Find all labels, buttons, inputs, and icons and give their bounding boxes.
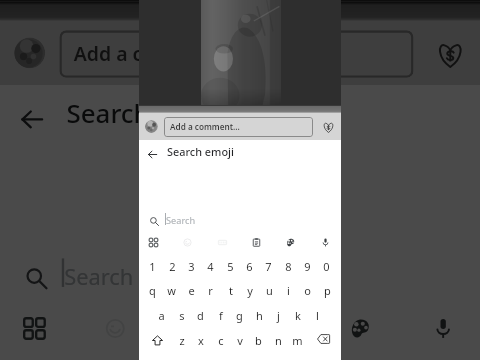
button[interactable]: t [221, 279, 240, 301]
button[interactable]: 8 [333, 358, 378, 360]
button[interactable]: Voice input [317, 234, 334, 251]
staticText: u [266, 283, 273, 298]
staticText: p [324, 283, 331, 298]
button[interactable]: Recent [145, 234, 162, 251]
button[interactable]: Stickers [340, 308, 380, 349]
staticText: 7 [265, 259, 272, 274]
staticText: Search [166, 214, 196, 227]
button[interactable]: y [240, 279, 259, 301]
button[interactable]: v [230, 329, 249, 351]
staticText: Add a comment... [170, 121, 240, 132]
staticText: e [188, 283, 195, 298]
button[interactable]: w [162, 279, 181, 301]
button[interactable]: 5 [221, 255, 240, 277]
staticText: o [304, 283, 311, 298]
button[interactable]: m [288, 329, 307, 351]
staticText: 0 [323, 259, 330, 274]
staticText: 6 [246, 259, 253, 274]
button[interactable]: f [211, 304, 230, 326]
button[interactable]: 2 [163, 255, 182, 277]
staticText: j [277, 308, 280, 323]
button[interactable]: 6 [240, 255, 259, 277]
staticText: n [275, 333, 282, 348]
button[interactable]: o [298, 279, 317, 301]
button[interactable]: Emoji [179, 234, 196, 251]
button[interactable]: 3 [182, 255, 201, 277]
button[interactable]: 3 [102, 358, 147, 360]
button[interactable]: GIF [178, 308, 219, 349]
button[interactable]: z [172, 329, 191, 351]
button[interactable]: Clipboard [259, 308, 299, 349]
button[interactable]: 0 [317, 255, 336, 277]
button[interactable]: d [191, 304, 210, 326]
staticText: l [316, 308, 319, 323]
button[interactable]: Shift [147, 330, 167, 350]
button[interactable]: Clipboard [248, 234, 265, 251]
button[interactable]: h [250, 304, 269, 326]
button[interactable]: Add a comment... [164, 117, 313, 137]
button[interactable]: k [288, 304, 307, 326]
button[interactable]: Voice input [423, 308, 463, 349]
staticText: 2 [169, 259, 176, 274]
button[interactable]: Back [12, 99, 52, 140]
button[interactable]: n [269, 329, 288, 351]
button[interactable]: Recent [14, 308, 55, 349]
button[interactable]: Send a gift [319, 118, 337, 136]
button[interactable]: 8 [279, 255, 298, 277]
button[interactable]: Profile [14, 37, 45, 68]
button[interactable]: p [318, 279, 337, 301]
button[interactable]: e [182, 279, 201, 301]
button[interactable]: Send a gift [428, 33, 470, 75]
button[interactable]: q [143, 279, 162, 301]
staticText: Search [64, 261, 135, 292]
staticText: s [179, 308, 185, 323]
button[interactable]: j [269, 304, 288, 326]
button[interactable]: Search [139, 212, 341, 232]
button[interactable]: 4 [201, 255, 220, 277]
staticText: Search emoji [66, 94, 226, 130]
button[interactable]: Back [144, 146, 161, 163]
button[interactable]: g [230, 304, 249, 326]
staticText: 5 [227, 259, 234, 274]
button[interactable]: b [249, 329, 268, 351]
staticText: x [198, 333, 204, 348]
button[interactable]: 9 [298, 255, 317, 277]
staticText: v [237, 333, 243, 348]
staticText: g [236, 308, 243, 323]
staticText: i [287, 283, 290, 298]
button[interactable]: s [172, 304, 191, 326]
staticText: 3 [188, 259, 195, 274]
button[interactable]: Profile [145, 120, 158, 133]
button[interactable]: GIF [214, 234, 231, 251]
button[interactable]: l [308, 304, 327, 326]
staticText: d [197, 308, 204, 323]
button[interactable]: Backspace [313, 329, 333, 349]
button[interactable]: 1 [143, 255, 162, 277]
staticText: m [292, 333, 303, 348]
button[interactable]: a [152, 304, 171, 326]
button[interactable]: u [260, 279, 279, 301]
staticText: 1 [149, 259, 156, 274]
button[interactable]: Search [0, 256, 480, 303]
button[interactable]: x [191, 329, 210, 351]
button[interactable]: 7 [259, 255, 278, 277]
button[interactable]: r [201, 279, 220, 301]
staticText: f [219, 308, 223, 323]
staticText: q [149, 283, 156, 298]
staticText: 8 [285, 259, 292, 274]
staticText: a [158, 308, 165, 323]
button[interactable]: Stickers [282, 234, 299, 251]
button[interactable]: i [279, 279, 298, 301]
button[interactable]: Add a comment... [59, 30, 413, 78]
button[interactable]: c [211, 329, 230, 351]
staticText: y [247, 283, 253, 298]
